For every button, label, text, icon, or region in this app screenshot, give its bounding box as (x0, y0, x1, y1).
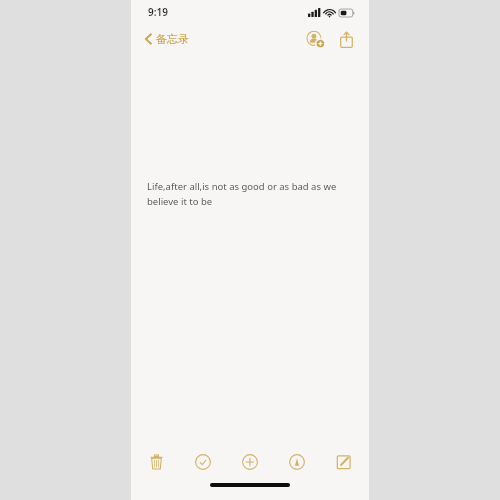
button[interactable]: Delete (141, 447, 171, 477)
staticText: 备忘录 (156, 32, 189, 46)
button[interactable]: Add person (302, 26, 328, 52)
staticText: 9:19 (148, 5, 168, 19)
button[interactable]: 备忘录 (143, 29, 191, 49)
staticText: Life,after all,is not as good or as bad … (147, 180, 349, 208)
button[interactable]: Checklist (188, 447, 218, 477)
button[interactable]: Add (235, 447, 265, 477)
button[interactable]: Share (333, 26, 359, 52)
button[interactable]: New note (329, 447, 359, 477)
button[interactable]: Markup (282, 447, 312, 477)
